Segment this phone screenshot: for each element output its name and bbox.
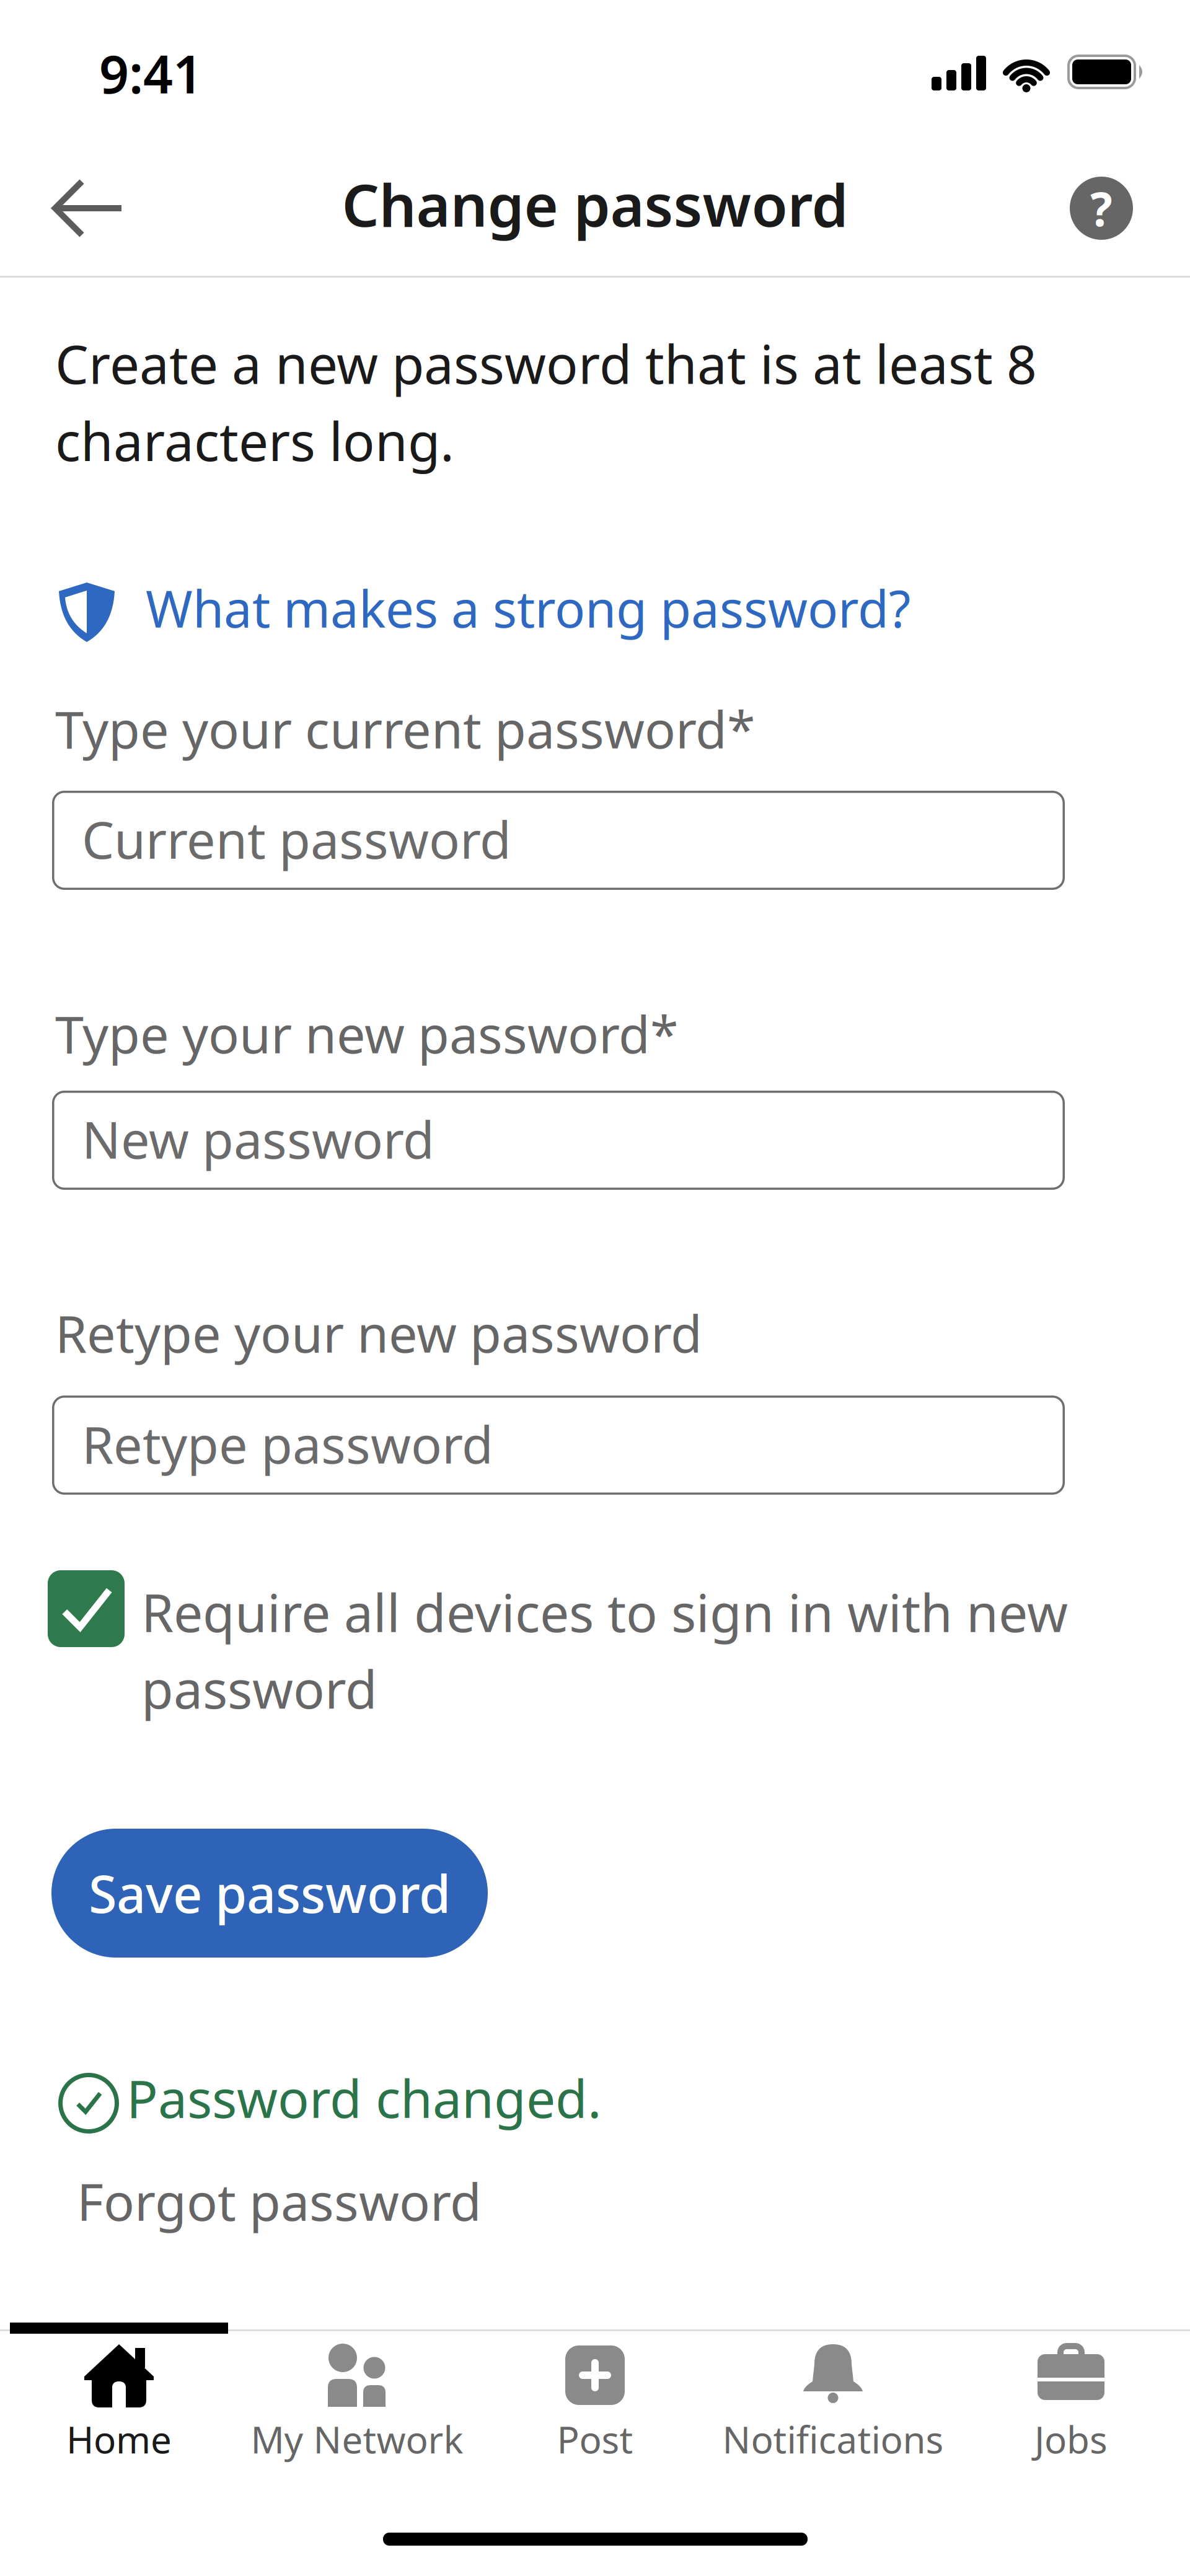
- staticText: Retype your new password: [55, 1299, 702, 1367]
- staticText: Change password: [342, 165, 848, 243]
- staticText: Home: [66, 2414, 172, 2464]
- staticText: Save password: [89, 1859, 451, 1927]
- staticText: What makes a strong password?: [146, 575, 910, 641]
- staticText: Retype password: [82, 1410, 493, 1478]
- staticText: Password changed.: [126, 2063, 602, 2132]
- staticText: Jobs: [1034, 2414, 1108, 2464]
- staticText: 9:41: [99, 39, 203, 108]
- staticText: My Network: [251, 2414, 463, 2464]
- staticText: ?: [1090, 177, 1113, 239]
- staticText: Notifications: [722, 2414, 944, 2464]
- staticText: Current password: [82, 805, 511, 873]
- button[interactable]: Save password: [51, 1829, 488, 1958]
- button[interactable]: Forgot password: [77, 2167, 482, 2235]
- staticText: Type your current password*: [55, 694, 756, 763]
- button[interactable]: What makes a strong password?: [57, 581, 925, 644]
- button[interactable]: Notifications: [714, 2330, 952, 2485]
- button[interactable]: Jobs: [952, 2330, 1190, 2485]
- staticText: Create a new password that is at least 8…: [55, 328, 1037, 476]
- button[interactable]: Current password: [52, 791, 1065, 890]
- staticText: Require all devices to sign in with new …: [141, 1577, 1068, 1723]
- staticText: Post: [557, 2414, 633, 2464]
- button[interactable]: Require all devices to sign in with new …: [48, 1570, 1101, 1731]
- staticText: Forgot password: [77, 2167, 482, 2235]
- button[interactable]: Home: [0, 2330, 238, 2485]
- staticText: Type your new password*: [55, 999, 679, 1067]
- button[interactable]: Post: [476, 2330, 714, 2485]
- button[interactable]: ?: [1070, 177, 1133, 240]
- button[interactable]: Retype password: [52, 1396, 1065, 1495]
- staticText: New password: [82, 1105, 434, 1173]
- button[interactable]: [43, 174, 124, 242]
- button[interactable]: My Network: [238, 2330, 476, 2485]
- button[interactable]: New password: [52, 1091, 1065, 1190]
